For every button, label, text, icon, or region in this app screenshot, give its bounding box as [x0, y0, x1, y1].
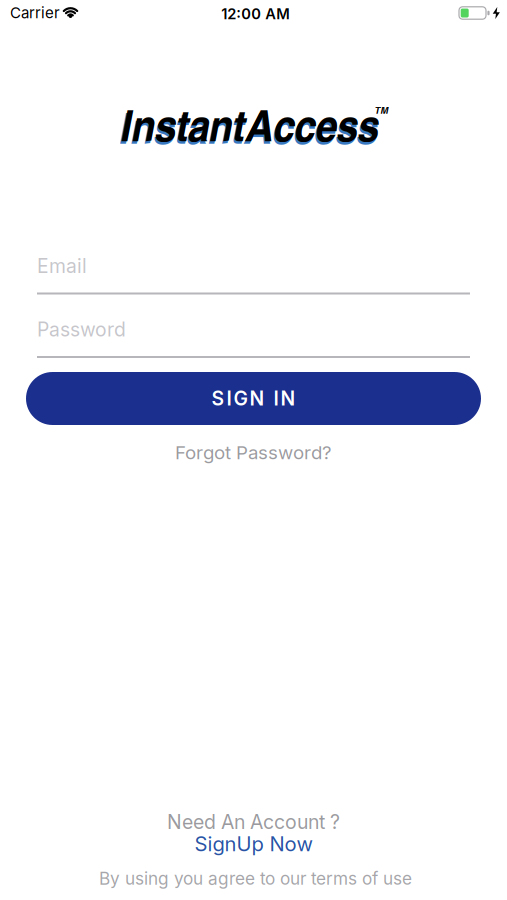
staticText: Need An Account ?: [167, 810, 340, 834]
staticText: S I G N I N: [211, 387, 295, 410]
textField[interactable]: Password: [37, 317, 470, 358]
staticText: TM: [374, 103, 388, 117]
staticText: Carrier: [10, 4, 60, 22]
staticText: Email: [37, 254, 87, 278]
staticText: InstantAccess: [132, 97, 365, 157]
staticText: 12:00 AM: [221, 5, 290, 23]
button[interactable]: Forgot Password?: [175, 441, 332, 464]
button[interactable]: SignUp Now: [194, 832, 312, 856]
staticText: InstantAccess: [133, 94, 366, 154]
staticText: Password: [37, 318, 126, 341]
button[interactable]: SIGN IN: [26, 372, 481, 425]
staticText: SignUp Now: [194, 832, 312, 856]
staticText: Forgot Password?: [175, 441, 332, 464]
staticText: By using you agree to our terms of use: [99, 868, 412, 889]
textField[interactable]: Email: [37, 254, 470, 295]
